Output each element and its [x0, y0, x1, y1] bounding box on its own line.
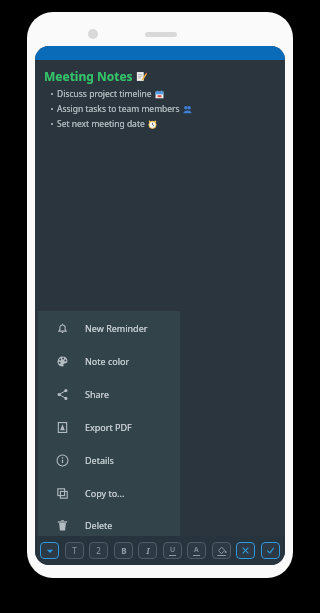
button[interactable]: Details	[38, 443, 180, 476]
button[interactable]: Italic	[138, 542, 157, 559]
button[interactable]: Text style menu	[40, 542, 59, 559]
staticText: Share	[85, 388, 110, 400]
staticText: T	[72, 545, 77, 556]
button[interactable]: Heading 2	[89, 542, 108, 559]
staticText: Details	[85, 454, 114, 466]
staticText: A	[194, 545, 199, 555]
staticText: 2	[96, 545, 101, 556]
staticText: B	[121, 545, 127, 556]
staticText: Note color	[85, 355, 130, 367]
button[interactable]: Underline	[163, 542, 182, 559]
button[interactable]: Delete	[38, 509, 180, 541]
button[interactable]: New Reminder	[38, 311, 180, 344]
staticText: New Reminder	[85, 322, 148, 334]
button[interactable]: Close	[236, 542, 255, 559]
button[interactable]: Bold	[114, 542, 133, 559]
staticText: Export PDF	[85, 421, 132, 433]
staticText: Assign tasks to team members	[57, 103, 180, 115]
staticText: Copy to...	[85, 487, 125, 499]
staticText: U	[170, 545, 176, 555]
button[interactable]: Share	[38, 377, 180, 410]
button[interactable]: Done	[261, 542, 280, 559]
staticText: Set next meeting date	[57, 118, 145, 130]
staticText: Delete	[85, 519, 113, 531]
staticText: Meeting Notes	[44, 68, 133, 84]
staticText: I	[146, 545, 150, 556]
button[interactable]: Copy to...	[38, 476, 180, 509]
button[interactable]: Export PDF	[38, 410, 180, 443]
button[interactable]: Text size	[65, 542, 84, 559]
button[interactable]: Note color	[38, 344, 180, 377]
staticText: Discuss project timeline	[57, 88, 152, 100]
button[interactable]: Highlight	[212, 542, 231, 559]
button[interactable]: Text color	[187, 542, 206, 559]
